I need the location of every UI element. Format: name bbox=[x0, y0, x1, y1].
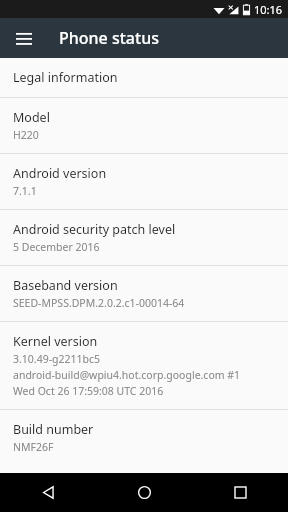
staticText: Baseband version bbox=[13, 277, 118, 294]
staticText: android-build@wpiu4.hot.corp.google.com … bbox=[13, 368, 241, 382]
button[interactable]: Build number bbox=[0, 410, 288, 465]
staticText: Wed Oct 26 17:59:08 UTC 2016 bbox=[13, 384, 164, 398]
button[interactable]: Legal information bbox=[0, 58, 288, 97]
button[interactable]: Recent apps bbox=[192, 473, 288, 512]
button[interactable]: Model bbox=[0, 98, 288, 153]
button[interactable]: Android version bbox=[0, 154, 288, 209]
button[interactable]: Android security patch level bbox=[0, 210, 288, 265]
button[interactable]: Open navigation menu bbox=[6, 20, 42, 56]
staticText: Model bbox=[13, 109, 50, 126]
staticText: Android security patch level bbox=[13, 221, 176, 238]
button[interactable]: Kernel version bbox=[0, 322, 288, 409]
staticText: 3.10.49-g2211bc5 bbox=[13, 352, 101, 366]
button[interactable]: Home bbox=[96, 473, 192, 512]
staticText: Phone status bbox=[59, 27, 159, 49]
staticText: Legal information bbox=[13, 69, 118, 86]
staticText: SEED-MPSS.DPM.2.0.2.c1-00014-64 bbox=[13, 296, 185, 310]
staticText: 10:16 bbox=[254, 2, 283, 17]
button[interactable]: Baseband version bbox=[0, 266, 288, 321]
button[interactable]: Back bbox=[0, 473, 96, 512]
staticText: Android version bbox=[13, 165, 107, 182]
staticText: NMF26F bbox=[13, 440, 54, 454]
staticText: 7.1.1 bbox=[13, 184, 37, 198]
staticText: Build number bbox=[13, 421, 94, 438]
staticText: Kernel version bbox=[13, 333, 98, 350]
staticText: 5 December 2016 bbox=[13, 240, 100, 254]
staticText: H220 bbox=[13, 128, 39, 142]
